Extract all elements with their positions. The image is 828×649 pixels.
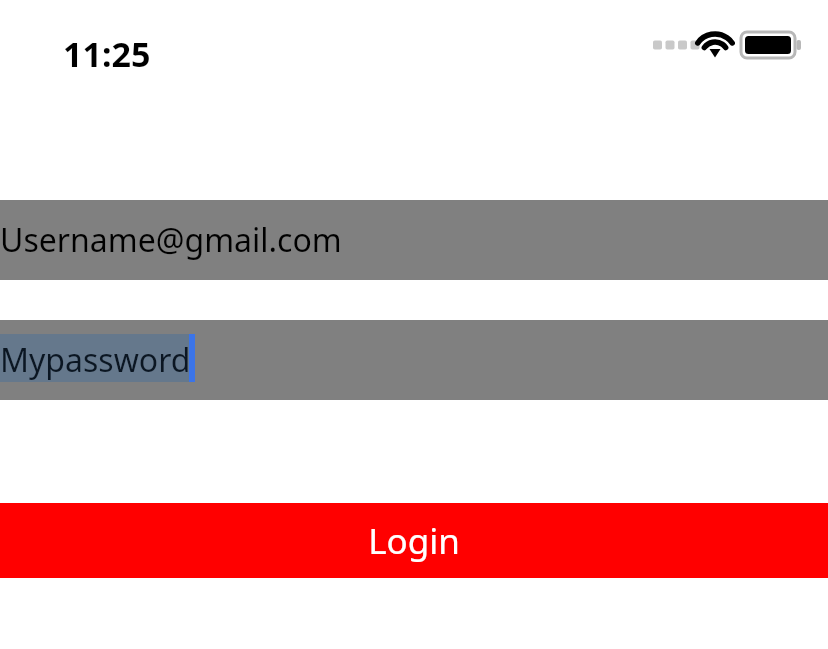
button[interactable]: Mypassword [0,320,828,400]
staticText: Username@gmail.com [0,218,342,262]
staticText: Mypassword [0,338,191,382]
staticText: 11:25 [63,31,151,77]
button[interactable]: Username@gmail.com [0,200,828,280]
button[interactable]: Login [0,503,828,578]
staticText: Login [368,517,460,565]
